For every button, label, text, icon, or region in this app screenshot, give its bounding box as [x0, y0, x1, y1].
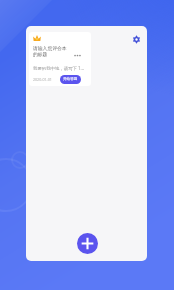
staticText: 开始答题 — [63, 77, 78, 82]
button[interactable]: Settings — [131, 34, 142, 45]
button[interactable]: 开始答题 — [60, 75, 81, 84]
button[interactable] — [29, 32, 91, 86]
button[interactable]: Add — [77, 233, 98, 254]
staticText: 我要的我中地，请写下 1... — [33, 65, 85, 71]
staticText: 2020-01-01 — [33, 77, 52, 82]
staticText: 请输入您评会本 的标题 — [33, 45, 67, 58]
button[interactable]: More options — [74, 53, 81, 58]
